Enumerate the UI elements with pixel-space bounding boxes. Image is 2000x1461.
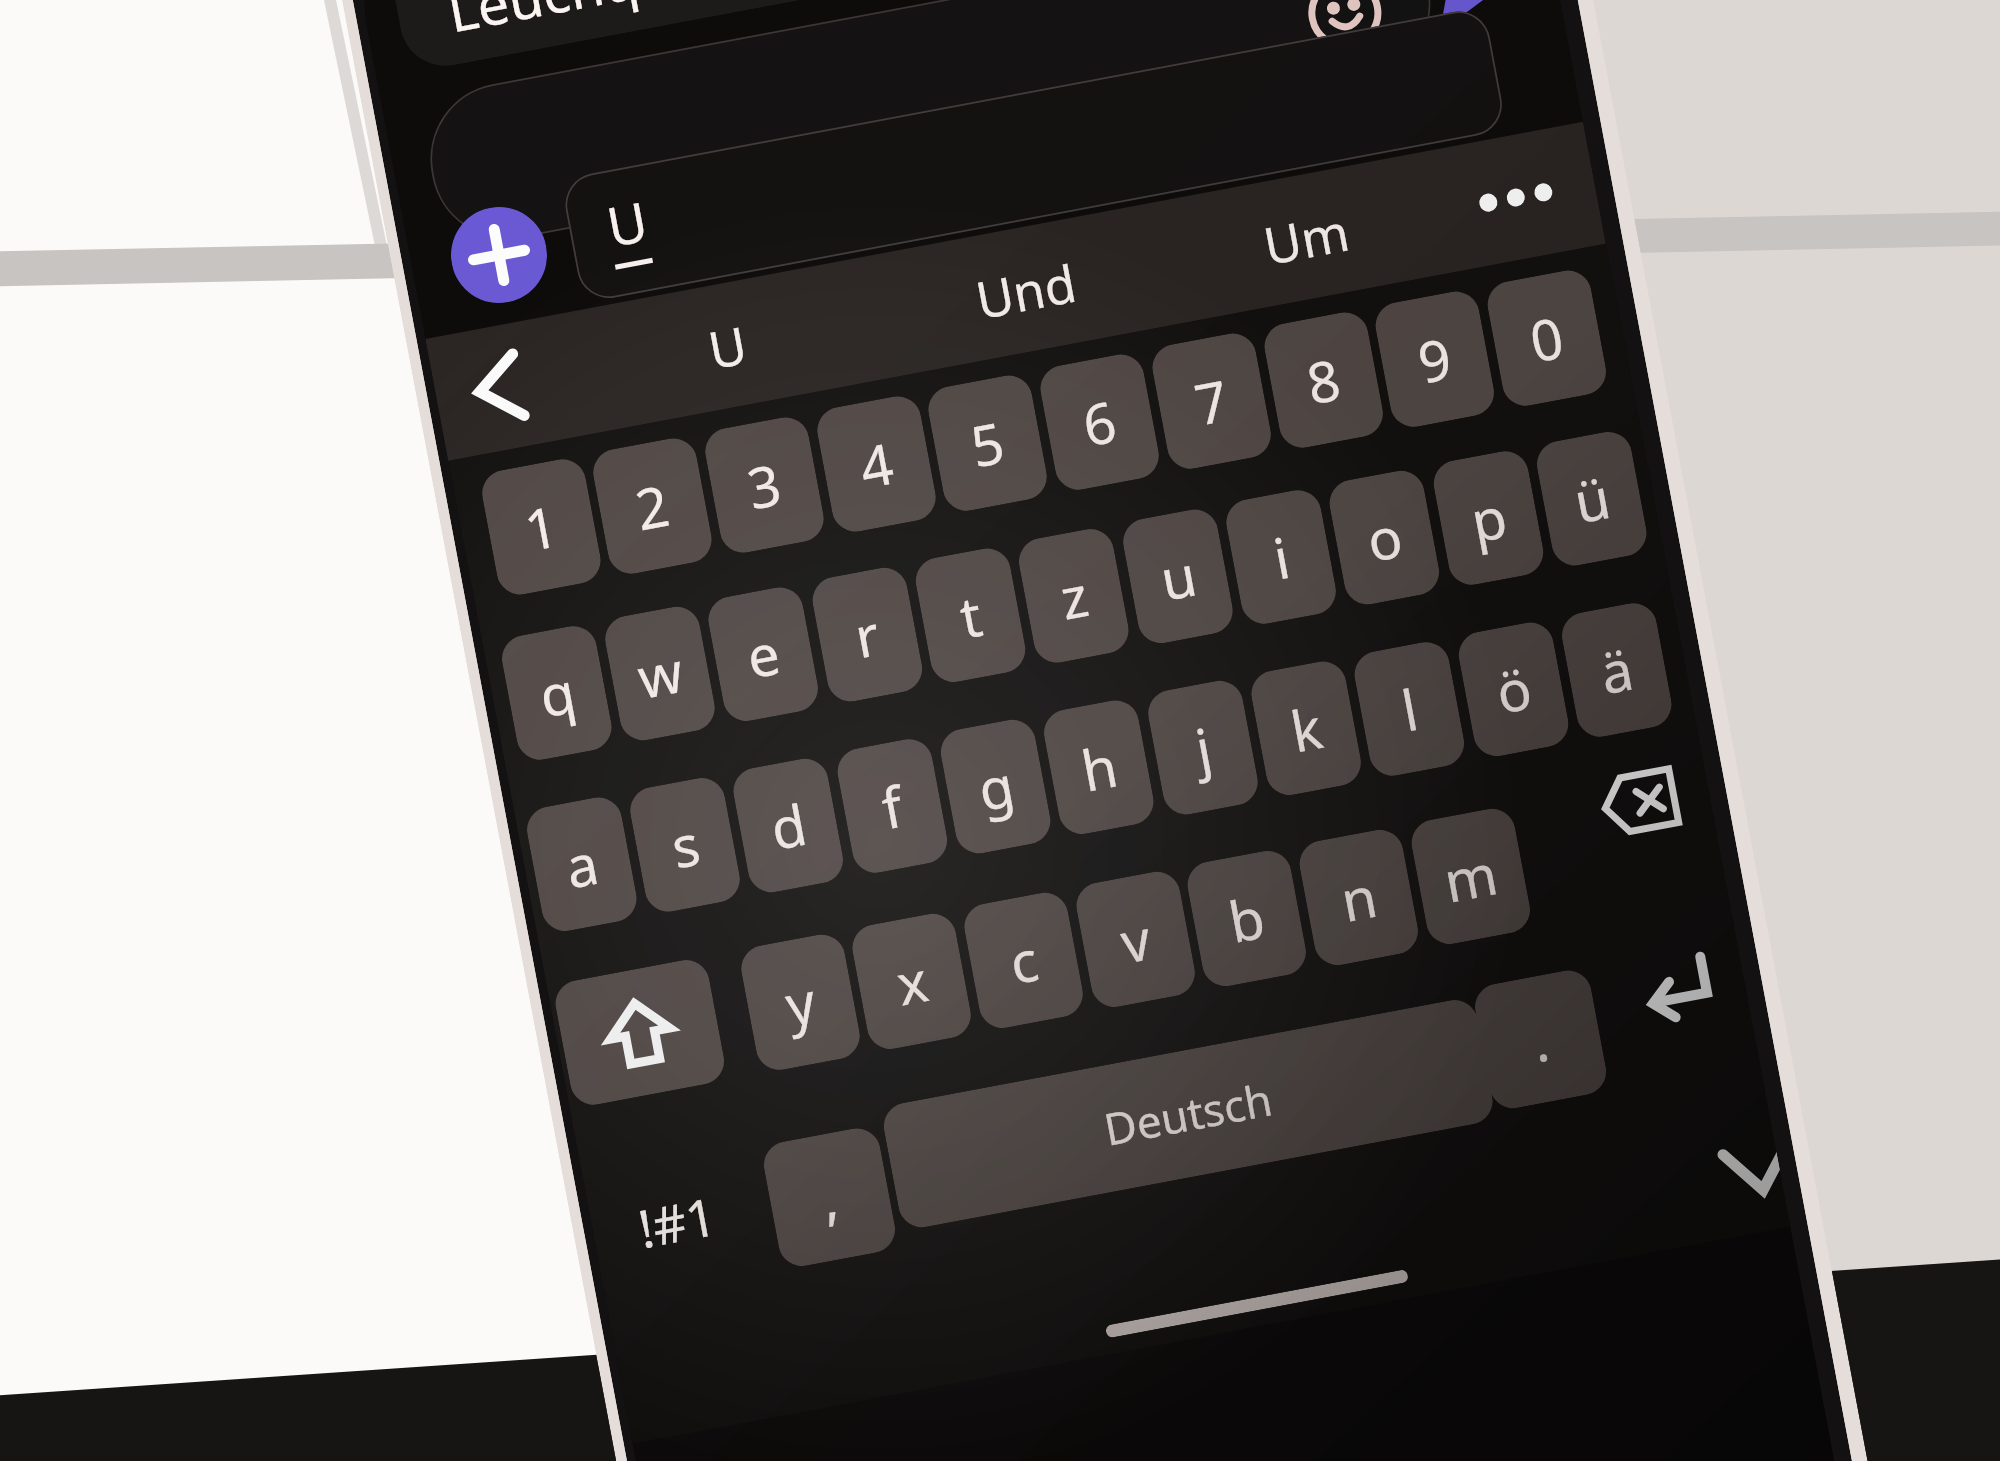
button[interactable]: t (912, 544, 1029, 686)
button[interactable]: U (560, 6, 1507, 303)
button[interactable] (418, 0, 1443, 252)
button[interactable]: Shift (551, 956, 728, 1109)
button[interactable]: j (1144, 677, 1262, 818)
staticText: 0 (1524, 298, 1570, 379)
button[interactable]: w (601, 603, 719, 744)
button[interactable]: 5 (924, 371, 1051, 515)
staticText: g (972, 746, 1020, 827)
button[interactable]: Hide keyboard (1689, 1116, 1788, 1230)
button[interactable]: Add (443, 199, 555, 311)
staticText: k (1284, 688, 1328, 768)
staticText: w (631, 632, 689, 715)
button[interactable]: u (1119, 505, 1237, 647)
button[interactable]: q (498, 622, 616, 764)
staticText: 1 (518, 486, 565, 567)
button[interactable]: 9 (1372, 288, 1498, 431)
staticText: n (1335, 857, 1383, 938)
button[interactable]: d (729, 755, 847, 896)
button[interactable]: Expand suggestions (438, 318, 559, 458)
button[interactable]: f (834, 735, 951, 877)
button[interactable]: 0 (1484, 267, 1610, 410)
staticText: 6 (1076, 382, 1123, 462)
button[interactable]: l (1351, 638, 1468, 780)
button[interactable]: ü (1533, 428, 1650, 569)
button[interactable]: y (737, 931, 864, 1074)
staticText: l (1395, 670, 1424, 748)
button[interactable]: 7 (1148, 329, 1275, 473)
staticText: r (848, 595, 886, 674)
button[interactable]: r (809, 564, 926, 705)
staticText: !#1 (632, 1179, 722, 1263)
staticText: Um (1258, 196, 1354, 279)
staticText: . (1526, 1000, 1555, 1078)
staticText: 4 (853, 424, 900, 504)
button[interactable]: e (704, 583, 822, 725)
button[interactable]: 4 (813, 392, 940, 536)
staticText: a (559, 824, 605, 904)
button[interactable]: n (1296, 826, 1422, 969)
button[interactable]: ä (1558, 599, 1675, 741)
button[interactable]: Enter (1593, 913, 1755, 1063)
button[interactable]: Und (906, 208, 1145, 371)
staticText: u (1154, 536, 1203, 617)
button[interactable]: 2 (589, 434, 716, 578)
staticText: ö (1490, 649, 1537, 730)
button[interactable]: Um (1186, 156, 1425, 318)
button[interactable]: Emoji (1302, 0, 1388, 56)
staticText: x (890, 941, 934, 1021)
button[interactable]: U (608, 264, 847, 427)
button[interactable]: c (960, 889, 1087, 1032)
button[interactable]: Backspace (1554, 727, 1720, 878)
staticText: q (533, 652, 581, 733)
button[interactable]: , (760, 1124, 899, 1270)
button[interactable]: p (1430, 447, 1547, 589)
staticText: 5 (964, 403, 1011, 483)
button[interactable]: More options (1456, 127, 1575, 267)
staticText: s (665, 805, 706, 885)
button[interactable]: Symbols (592, 1145, 763, 1296)
button[interactable]: a (523, 793, 641, 935)
button[interactable]: s (626, 774, 744, 916)
staticText: U (601, 183, 654, 263)
button[interactable]: 6 (1036, 350, 1163, 494)
button[interactable]: h (1040, 696, 1158, 838)
staticText: 3 (741, 445, 788, 525)
button[interactable]: k (1247, 657, 1365, 799)
button[interactable]: 8 (1260, 308, 1387, 452)
staticText: o (1361, 497, 1408, 578)
button[interactable]: z (1015, 525, 1133, 667)
button[interactable]: 3 (701, 413, 828, 557)
staticText: p (1465, 477, 1513, 558)
staticText: U (703, 308, 753, 383)
button[interactable]: Deutsch (880, 996, 1497, 1231)
staticText: ü (1568, 458, 1616, 539)
button[interactable]: o (1325, 467, 1443, 608)
button[interactable]: 1 (478, 455, 605, 598)
button[interactable]: Send (1417, 0, 1531, 44)
button[interactable]: i (1222, 486, 1340, 628)
staticText: i (1267, 518, 1296, 596)
staticText: e (740, 614, 786, 694)
staticText: j (1189, 709, 1218, 786)
staticText: t (954, 576, 988, 654)
button[interactable]: . (1471, 967, 1610, 1112)
button[interactable]: b (1183, 847, 1310, 990)
button[interactable]: x (848, 910, 975, 1053)
staticText: z (1054, 556, 1095, 636)
staticText: ä (1594, 630, 1639, 710)
button[interactable]: m (1408, 805, 1534, 948)
button[interactable]: g (937, 716, 1054, 857)
staticText: m (1438, 834, 1504, 919)
staticText: b (1222, 878, 1271, 959)
staticText: c (1003, 920, 1044, 1000)
staticText: Deutsch (1099, 1068, 1277, 1159)
staticText: 8 (1300, 340, 1347, 420)
staticText: 2 (629, 466, 676, 546)
button[interactable]: v (1072, 868, 1199, 1011)
staticText: 9 (1412, 319, 1458, 400)
staticText: Leuchtpunkten (441, 0, 846, 49)
staticText: Und (970, 247, 1082, 333)
staticText: , (815, 1158, 844, 1236)
staticText: v (1114, 899, 1157, 979)
button[interactable]: ö (1455, 619, 1572, 760)
